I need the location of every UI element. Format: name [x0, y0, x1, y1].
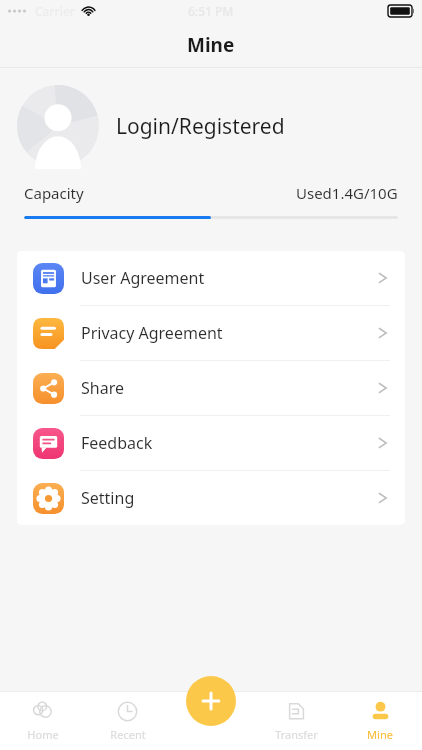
staticText: Login/Registered — [116, 112, 285, 141]
button[interactable]: Recent — [85, 691, 170, 750]
staticText: User Agreement — [81, 267, 378, 289]
button[interactable]: Setting — [17, 471, 405, 525]
staticText: Feedback — [81, 432, 378, 454]
staticText: Home — [27, 727, 59, 742]
staticText: Used1.4G/10G — [296, 183, 398, 203]
button[interactable]: Share — [17, 361, 405, 415]
button[interactable]: Add — [186, 676, 236, 726]
staticText: Share — [81, 377, 378, 399]
staticText: Setting — [81, 487, 378, 509]
staticText: Transfer — [275, 727, 318, 742]
button[interactable]: Privacy Agreement — [17, 306, 405, 360]
staticText: 6:51 PM — [188, 3, 234, 19]
staticText: Mine — [187, 32, 235, 58]
staticText: Mine — [367, 727, 393, 742]
staticText: Recent — [110, 727, 146, 742]
button[interactable]: Feedback — [17, 416, 405, 470]
button[interactable]: Transfer — [254, 691, 338, 750]
button[interactable]: Login/Registered — [0, 81, 422, 171]
staticText: Capacity — [24, 183, 84, 203]
button[interactable]: User Agreement — [17, 251, 405, 305]
staticText: Privacy Agreement — [81, 322, 378, 344]
button[interactable]: Home — [0, 691, 85, 750]
staticText: Carrier — [35, 3, 75, 19]
button[interactable]: Mine — [338, 691, 422, 750]
